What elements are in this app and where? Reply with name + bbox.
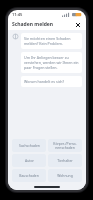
staticText: Wohnung [57,173,73,178]
button[interactable]: Bauschaden [12,169,46,182]
staticText: Körper-/Perso- nenschaden [53,141,77,150]
staticText: paar Fragen stellen. [24,65,58,70]
button[interactable]: Wohnung [48,169,82,182]
staticText: Bauschaden [19,173,39,178]
staticText: Sachschaden [19,143,40,148]
button[interactable]: Tierhalter [48,154,82,167]
button[interactable]: Körper-/Perso- nenschaden [48,139,82,152]
staticText: Um Ihr Anliegen besser zu [24,55,69,60]
button[interactable]: Autor [12,154,46,167]
staticText: Sie möchten einen Schaden [24,36,71,41]
staticText: verstehen, werden wir Ihnen ein [24,60,79,65]
staticText: Worum handelt es sich? [24,79,65,84]
button[interactable]: Sachschaden [12,139,46,152]
staticText: Schaden melden [12,21,54,28]
staticText: Autor [25,158,34,163]
button[interactable]: Schließen [74,21,82,29]
staticText: 11:45 [12,12,23,17]
staticText: Tierhalter [57,158,73,163]
staticText: melden? Kein Problem. [24,41,63,46]
